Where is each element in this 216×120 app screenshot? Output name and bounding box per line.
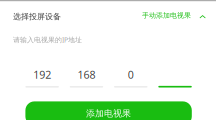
staticText: 168 <box>77 67 95 82</box>
button[interactable]: 手动添加电视果 <box>142 10 206 20</box>
staticText: 手动添加电视果 <box>142 11 191 20</box>
staticText: 添加电视果 <box>86 108 131 119</box>
staticText: 选择投屏设备 <box>13 11 61 22</box>
staticText: 0 <box>128 67 134 82</box>
staticText: 192 <box>33 67 51 82</box>
button[interactable]: 添加电视果 <box>25 101 192 120</box>
staticText: 请输入电视果的IP地址 <box>13 35 82 44</box>
